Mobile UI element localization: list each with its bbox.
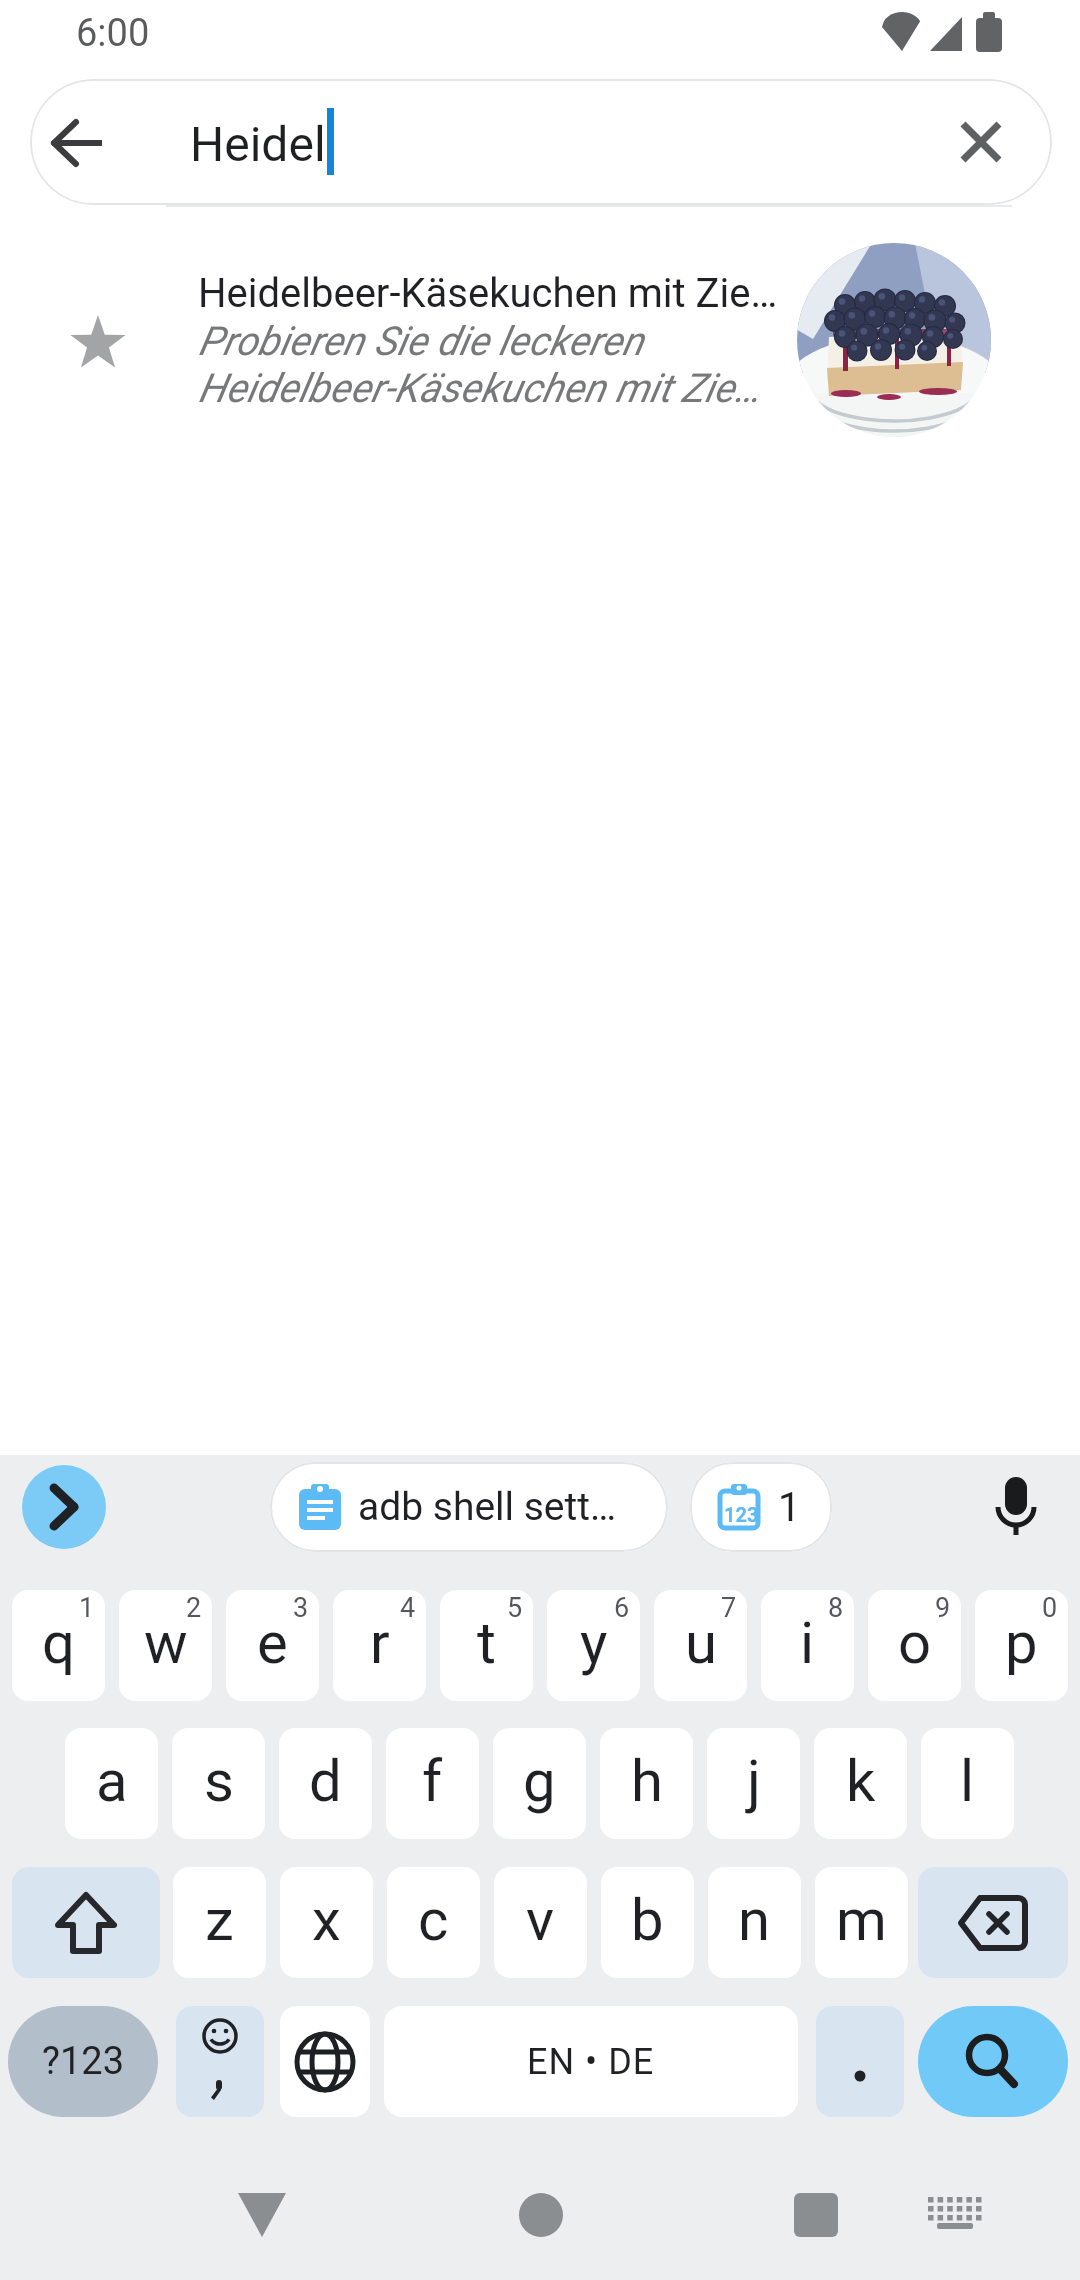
- button[interactable]: [920, 2180, 990, 2250]
- button[interactable]: v: [494, 1867, 587, 1978]
- button[interactable]: l: [921, 1728, 1014, 1839]
- button[interactable]: x: [280, 1867, 373, 1978]
- button[interactable]: [816, 2006, 904, 2117]
- staticText: c: [418, 1886, 449, 1954]
- button[interactable]: [489, 2170, 593, 2260]
- staticText: p: [1005, 1609, 1038, 1677]
- button[interactable]: [280, 2006, 370, 2117]
- staticText: 7: [721, 1592, 737, 1624]
- staticText: 3: [293, 1592, 309, 1624]
- staticText: 1: [778, 1484, 801, 1531]
- button[interactable]: z: [173, 1867, 266, 1978]
- button[interactable]: [764, 2170, 868, 2260]
- staticText: w: [144, 1609, 188, 1677]
- button[interactable]: [918, 1867, 1068, 1978]
- button[interactable]: w: [119, 1590, 212, 1701]
- staticText: 9: [935, 1592, 951, 1624]
- button[interactable]: [176, 2006, 264, 2117]
- button[interactable]: ?123: [8, 2006, 158, 2117]
- staticText: u: [685, 1609, 717, 1677]
- staticText: ?123: [42, 2039, 125, 2084]
- staticText: d: [309, 1747, 342, 1815]
- staticText: l: [960, 1747, 975, 1815]
- staticText: 8: [828, 1592, 844, 1624]
- button[interactable]: 123: [690, 1462, 832, 1552]
- button[interactable]: k: [814, 1728, 907, 1839]
- staticText: Heidelbeer-Käsekuchen mit Zie…: [198, 270, 778, 317]
- button[interactable]: [210, 2170, 314, 2260]
- staticText: h: [631, 1747, 663, 1815]
- button[interactable]: n: [708, 1867, 801, 1978]
- button[interactable]: [22, 1465, 106, 1549]
- staticText: y: [580, 1609, 608, 1677]
- button[interactable]: m: [815, 1867, 908, 1978]
- button[interactable]: g: [493, 1728, 586, 1839]
- button[interactable]: EN • DE: [384, 2006, 798, 2117]
- button[interactable]: [40, 105, 116, 181]
- button[interactable]: i: [761, 1590, 854, 1701]
- staticText: v: [526, 1886, 555, 1954]
- button[interactable]: [918, 2006, 1068, 2117]
- staticText: 1: [79, 1592, 95, 1624]
- button[interactable]: [12, 1867, 160, 1978]
- staticText: q: [42, 1609, 75, 1677]
- staticText: EN • DE: [527, 2041, 655, 2083]
- button[interactable]: t: [440, 1590, 533, 1701]
- button[interactable]: [982, 1470, 1050, 1542]
- button[interactable]: [941, 102, 1021, 182]
- staticText: k: [846, 1747, 876, 1815]
- button[interactable]: e: [226, 1590, 319, 1701]
- staticText: s: [204, 1747, 234, 1815]
- staticText: 6:00: [76, 11, 150, 56]
- staticText: 123: [724, 1503, 759, 1526]
- staticText: n: [738, 1886, 771, 1954]
- button[interactable]: d: [279, 1728, 372, 1839]
- button[interactable]: adb shell sett…: [270, 1462, 668, 1552]
- staticText: e: [257, 1609, 288, 1677]
- staticText: z: [205, 1886, 234, 1954]
- button[interactable]: p: [975, 1590, 1068, 1701]
- staticText: adb shell sett…: [358, 1484, 617, 1530]
- button[interactable]: Heidelbeer-Käsekuchen mit Zie…: [0, 237, 1080, 447]
- staticText: Probieren Sie die leckeren Heidelbeer-Kä…: [198, 318, 761, 412]
- staticText: m: [836, 1886, 887, 1954]
- staticText: f: [422, 1747, 443, 1815]
- button[interactable]: s: [172, 1728, 265, 1839]
- staticText: 6: [614, 1592, 630, 1624]
- staticText: o: [898, 1609, 932, 1677]
- staticText: 2: [186, 1592, 202, 1624]
- staticText: 0: [1042, 1592, 1058, 1624]
- button[interactable]: o: [868, 1590, 961, 1701]
- staticText: 5: [507, 1592, 523, 1624]
- staticText: 4: [400, 1592, 416, 1624]
- staticText: r: [370, 1609, 390, 1677]
- button[interactable]: c: [387, 1867, 480, 1978]
- button[interactable]: b: [601, 1867, 694, 1978]
- staticText: Heidel: [190, 116, 326, 172]
- button[interactable]: u: [654, 1590, 747, 1701]
- staticText: g: [523, 1747, 556, 1815]
- staticText: j: [747, 1747, 761, 1815]
- staticText: b: [631, 1886, 664, 1954]
- button[interactable]: f: [386, 1728, 479, 1839]
- staticText: i: [800, 1609, 815, 1677]
- staticText: a: [96, 1747, 128, 1815]
- button[interactable]: r: [333, 1590, 426, 1701]
- button[interactable]: h: [600, 1728, 693, 1839]
- staticText: x: [312, 1886, 341, 1954]
- staticText: t: [477, 1609, 496, 1677]
- button[interactable]: a: [65, 1728, 158, 1839]
- button[interactable]: [30, 79, 1052, 205]
- button[interactable]: j: [707, 1728, 800, 1839]
- button[interactable]: y: [547, 1590, 640, 1701]
- button[interactable]: q: [12, 1590, 105, 1701]
